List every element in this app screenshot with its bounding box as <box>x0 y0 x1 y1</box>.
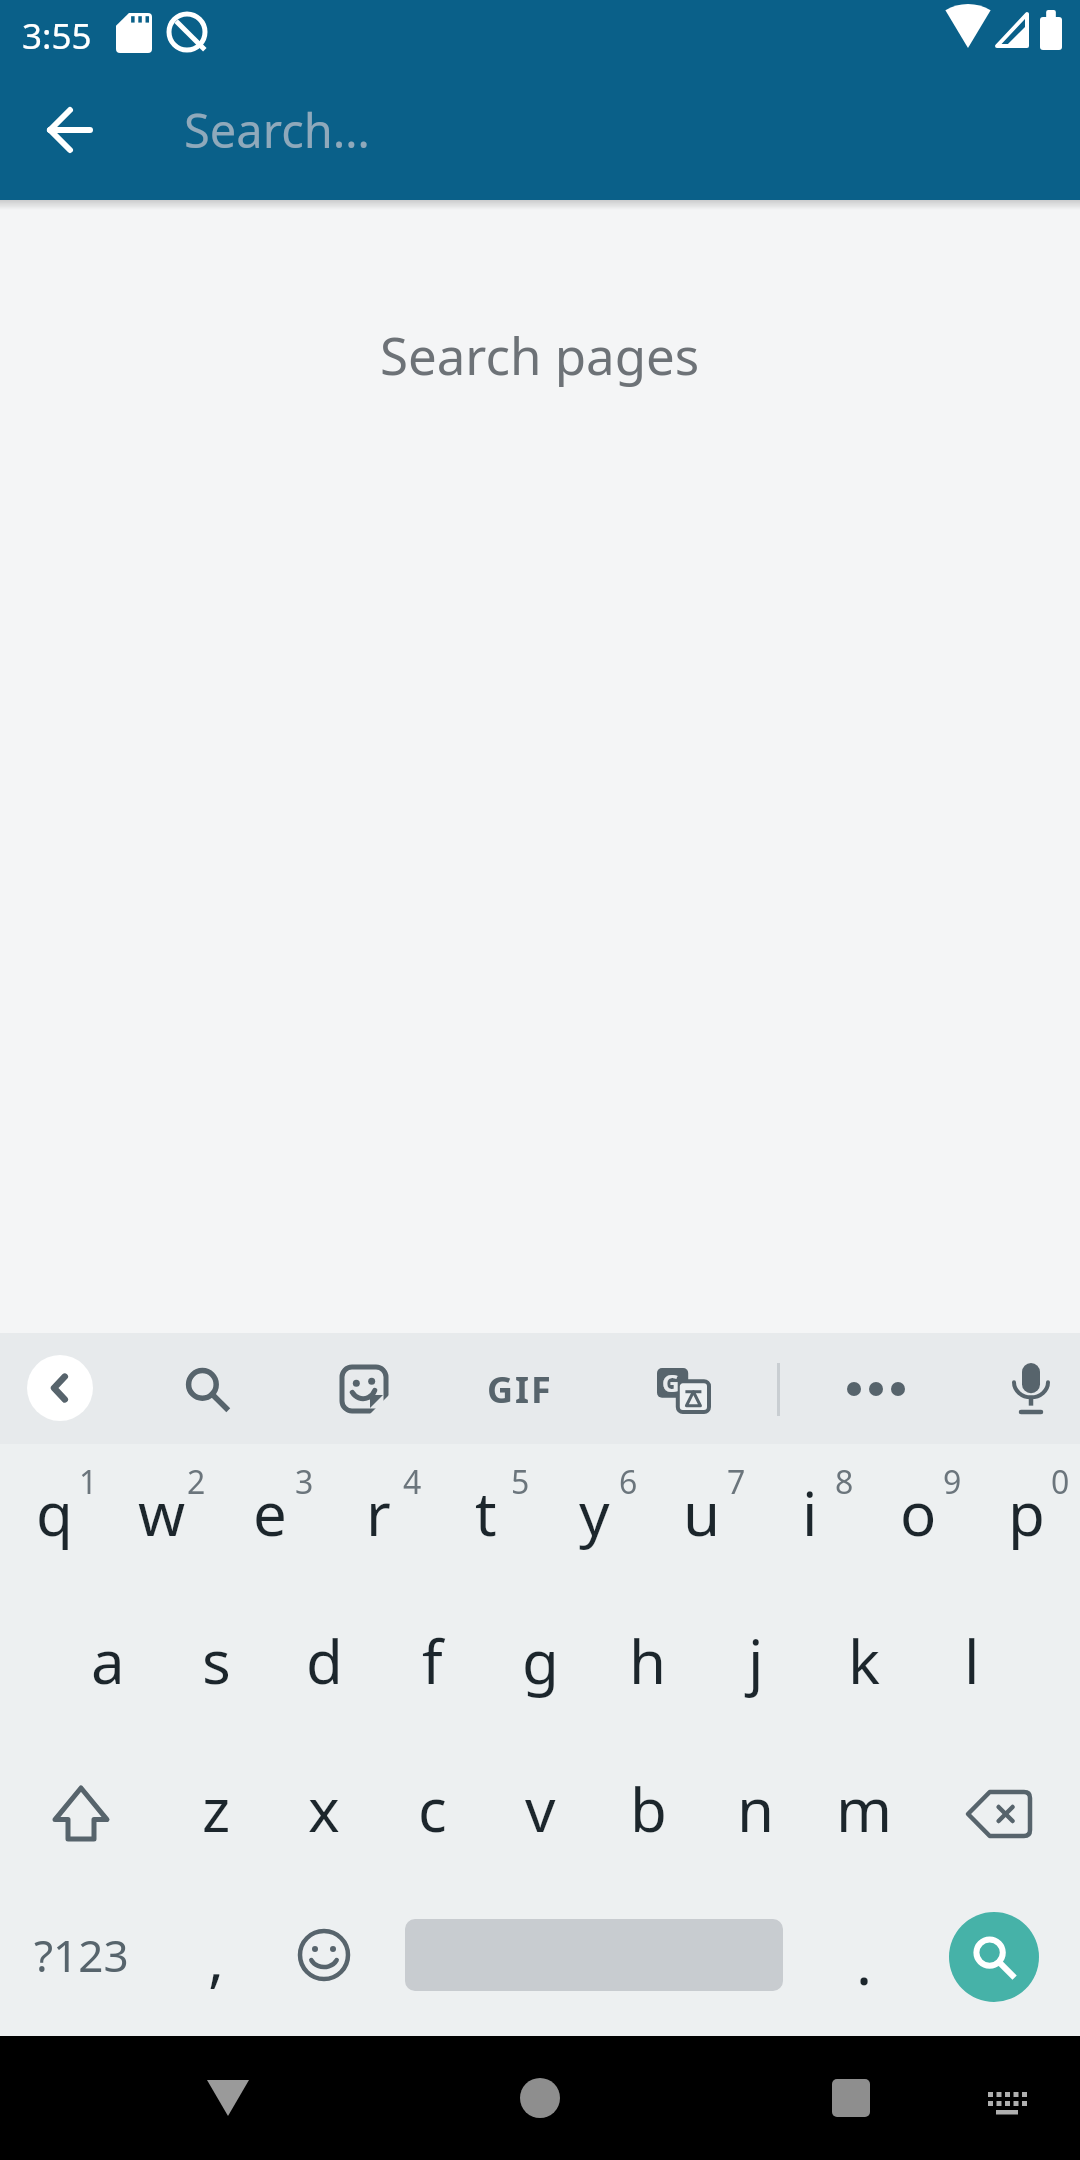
staticText: b <box>630 1768 667 1850</box>
button[interactable] <box>466 2061 614 2135</box>
staticText: . <box>856 1921 873 2003</box>
button[interactable]: y <box>540 1444 648 1592</box>
button[interactable] <box>996 1354 1066 1424</box>
button[interactable]: t <box>432 1444 540 1592</box>
button[interactable] <box>172 1354 242 1424</box>
button[interactable]: k <box>810 1592 918 1740</box>
staticText: d <box>306 1620 343 1702</box>
staticText: c <box>418 1768 447 1850</box>
staticText: 9 <box>943 1460 962 1504</box>
staticText: j <box>748 1620 764 1702</box>
staticText: 3 <box>295 1460 314 1504</box>
staticText: G <box>662 1366 680 1399</box>
button[interactable]: l <box>918 1592 1026 1740</box>
button[interactable]: h <box>594 1592 702 1740</box>
staticText: x <box>308 1768 340 1850</box>
button[interactable]: m <box>810 1740 918 1888</box>
button[interactable]: i <box>756 1444 864 1592</box>
button[interactable]: q <box>0 1444 108 1592</box>
button[interactable]: G <box>648 1354 718 1424</box>
button[interactable]: . <box>810 1888 918 2036</box>
button[interactable]: j <box>702 1592 810 1740</box>
button[interactable]: GIF <box>460 1354 580 1424</box>
staticText: t <box>475 1472 497 1554</box>
button[interactable]: r <box>324 1444 432 1592</box>
staticText: 8 <box>835 1460 854 1504</box>
button[interactable] <box>968 2078 1046 2128</box>
staticText: q <box>36 1472 73 1554</box>
staticText: ?123 <box>34 1925 129 1985</box>
staticText: k <box>848 1620 881 1702</box>
button[interactable]: f <box>378 1592 486 1740</box>
staticText: 3:55 <box>22 12 92 60</box>
button[interactable] <box>918 1888 1080 2036</box>
staticText: y <box>579 1472 610 1554</box>
staticText: 0 <box>1051 1460 1070 1504</box>
staticText: , <box>208 1917 225 1999</box>
button[interactable]: z <box>162 1740 270 1888</box>
staticText: g <box>522 1620 559 1702</box>
button[interactable] <box>840 1354 912 1424</box>
staticText: l <box>964 1620 980 1702</box>
staticText: 4 <box>403 1460 422 1504</box>
staticText: 7 <box>727 1460 746 1504</box>
button[interactable]: p <box>972 1444 1080 1592</box>
staticText: e <box>253 1472 287 1554</box>
staticText: r <box>366 1472 391 1554</box>
button[interactable]: o <box>864 1444 972 1592</box>
button[interactable]: ?123 <box>0 1888 162 2036</box>
staticText: i <box>802 1472 818 1554</box>
staticText: f <box>422 1620 443 1702</box>
button[interactable] <box>27 1355 93 1421</box>
staticText: 6 <box>619 1460 638 1504</box>
staticText: w <box>138 1472 186 1554</box>
button[interactable] <box>154 2061 302 2135</box>
button[interactable]: w <box>108 1444 216 1592</box>
button[interactable]: , <box>162 1888 270 2036</box>
button[interactable]: b <box>594 1740 702 1888</box>
button[interactable]: a <box>54 1592 162 1740</box>
button[interactable]: u <box>648 1444 756 1592</box>
button[interactable]: d <box>270 1592 378 1740</box>
staticText: u <box>683 1472 721 1554</box>
button[interactable]: v <box>486 1740 594 1888</box>
button[interactable] <box>949 1912 1039 2002</box>
staticText: z <box>202 1768 231 1850</box>
button[interactable]: e <box>216 1444 324 1592</box>
staticText: n <box>737 1768 775 1850</box>
button[interactable] <box>270 1888 378 2036</box>
staticText: 2 <box>187 1460 206 1504</box>
staticText: 1 <box>79 1460 98 1504</box>
staticText: Search… <box>184 98 370 162</box>
button[interactable] <box>28 88 112 172</box>
staticText: m <box>836 1768 893 1850</box>
button[interactable] <box>777 2061 925 2135</box>
staticText: GIF <box>487 1365 553 1414</box>
button[interactable]: s <box>162 1592 270 1740</box>
staticText: o <box>900 1472 937 1554</box>
button[interactable]: c <box>378 1740 486 1888</box>
button[interactable] <box>378 1888 810 2036</box>
staticText: 5 <box>511 1460 530 1504</box>
staticText: h <box>629 1620 667 1702</box>
staticText: v <box>525 1768 556 1850</box>
staticText: p <box>1008 1472 1045 1554</box>
staticText: Search pages <box>380 320 700 389</box>
button[interactable] <box>0 1740 162 1888</box>
button[interactable] <box>918 1740 1080 1888</box>
button[interactable]: g <box>486 1592 594 1740</box>
button[interactable]: n <box>702 1740 810 1888</box>
staticText: a <box>91 1620 125 1702</box>
button[interactable] <box>329 1354 399 1424</box>
button[interactable]: x <box>270 1740 378 1888</box>
staticText: s <box>202 1620 231 1702</box>
